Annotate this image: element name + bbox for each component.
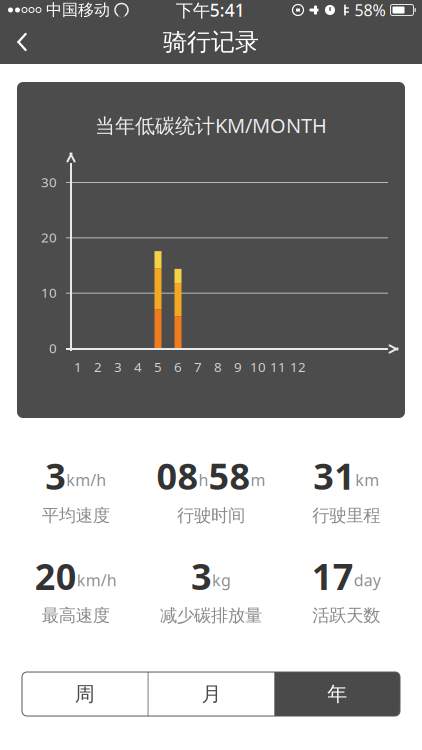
staticText: h [198,469,208,490]
staticText: 活跃天数 [312,605,380,626]
staticText: 58% [354,0,385,21]
staticText: 8 [214,358,222,376]
staticText: 12 [290,358,306,376]
staticText: 3 [45,452,66,500]
staticText: 年 [327,682,347,706]
staticText: 当年低碳统计KM/MONTH [95,112,327,139]
staticText: 中国移动 [46,0,110,20]
button[interactable]: 年 [274,672,400,716]
staticText: 7 [194,358,202,376]
staticText: 行驶里程 [312,505,380,526]
staticText: 0 [49,339,57,357]
button[interactable]: 周 [22,672,148,716]
staticText: 4 [134,358,142,376]
staticText: 骑行记录 [163,27,259,57]
staticText: 最高速度 [42,605,110,626]
staticText: 30 [41,173,57,191]
staticText: 20 [35,552,77,600]
staticText: 下午5:41 [176,0,245,21]
staticText: 9 [234,358,242,376]
button[interactable]: 月 [149,672,274,716]
staticText: 10 [41,284,57,301]
staticText: km/h [77,569,117,591]
staticText: 17 [312,552,354,600]
staticText: 行驶时间 [177,505,245,526]
staticText: m [250,469,265,490]
staticText: kg [212,569,231,591]
staticText: 5 [154,358,162,376]
staticText: 10 [250,358,266,376]
staticText: 周 [75,682,95,706]
staticText: 08 [156,452,198,500]
staticText: 减少碳排放量 [160,605,262,626]
staticText: day [354,569,381,591]
staticText: 3 [191,552,212,600]
staticText: 3 [114,358,122,376]
staticText: 平均速度 [42,505,110,526]
staticText: 31 [313,452,355,500]
staticText: 2 [94,358,102,376]
staticText: 58 [208,452,250,500]
staticText: 月 [201,682,221,706]
staticText: 6 [174,358,182,376]
staticText: 11 [270,358,286,376]
staticText: km [355,469,379,490]
staticText: km/h [66,469,106,490]
staticText: 20 [41,228,57,246]
staticText: 1 [74,358,82,376]
button[interactable]: Back [0,20,44,64]
